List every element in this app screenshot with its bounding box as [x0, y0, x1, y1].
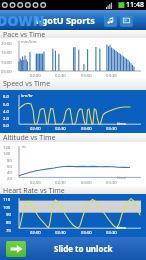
staticText: 90 [6, 212, 11, 218]
button[interactable]: Heart Rate vs Time [0, 186, 146, 194]
staticText: min/km [21, 39, 37, 45]
button[interactable]: Altitude vs Time [0, 133, 146, 142]
staticText: Altitude vs Time [3, 133, 56, 142]
staticText: 03:30 [106, 230, 117, 236]
staticText: 4.0 [3, 109, 9, 115]
staticText: 03:30 [106, 126, 117, 132]
staticText: 02:00 [30, 180, 41, 186]
staticText: m [22, 144, 26, 150]
staticText: 10:00 [1, 60, 12, 66]
staticText: 05:00 [1, 69, 12, 75]
staticText: 0.0 [3, 123, 9, 129]
staticText: 110 [3, 197, 11, 203]
staticText: 03:00 [81, 73, 92, 79]
staticText: DOWN [0, 11, 45, 30]
staticText: 6.0 [3, 102, 9, 108]
button[interactable]: Speed vs Time [0, 78, 146, 90]
staticText: 80 [7, 158, 12, 164]
staticText: Speed vs Time [3, 79, 51, 89]
staticText: 15:00 [1, 50, 12, 56]
staticText: km/hr [21, 93, 34, 99]
staticText: 03:00 [81, 126, 92, 132]
staticText: 120 [3, 145, 11, 151]
staticText: 02:30 [55, 180, 66, 186]
staticText: 20 [7, 176, 12, 182]
staticText: 02:30 [55, 126, 66, 132]
staticText: 100 [3, 205, 11, 211]
button[interactable]: Pace vs Time [0, 30, 146, 38]
staticText: 03:00 [81, 230, 92, 236]
staticText: 100 [3, 151, 11, 157]
staticText: 70 [6, 228, 11, 234]
staticText: 80 [6, 220, 11, 226]
staticText: 11:48 [126, 0, 144, 10]
staticText: Heart Rate vs Time [3, 186, 65, 194]
staticText: 60 [7, 164, 12, 170]
staticText: 03:00 [81, 180, 92, 186]
staticText: time [117, 175, 126, 181]
staticText: bpm [21, 196, 31, 202]
staticText: 03:30 [106, 180, 117, 186]
button[interactable]: Music [104, 14, 117, 27]
staticText: Pace vs Time [3, 30, 46, 38]
staticText: time [117, 225, 126, 231]
staticText: time [117, 121, 126, 127]
staticText: 03:30 [106, 73, 117, 79]
staticText: 40 [7, 170, 12, 176]
staticText: 2.0 [3, 116, 9, 122]
staticText: 8.0 [3, 94, 9, 100]
staticText: Slide to unlock [54, 243, 113, 254]
staticText: 02:00 [30, 230, 41, 236]
staticText: 20:00 [1, 41, 12, 47]
button[interactable]: Gallery [120, 14, 133, 27]
staticText: i-gotU Sports [36, 14, 95, 26]
button[interactable]: Slide to unlock [0, 237, 146, 260]
staticText: 02:30 [55, 73, 66, 79]
staticText: 02:30 [55, 230, 66, 236]
staticText: 02:00 [30, 73, 41, 79]
staticText: 02:00 [30, 126, 41, 132]
